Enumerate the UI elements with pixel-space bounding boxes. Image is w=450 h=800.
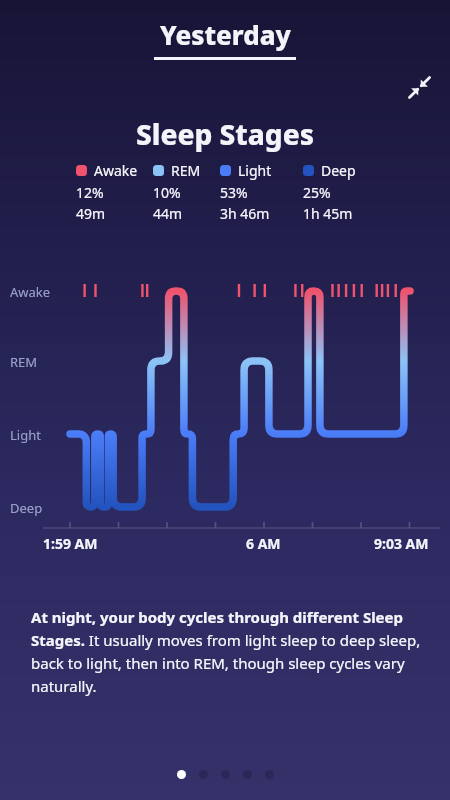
staticText: Awake (10, 283, 51, 301)
button[interactable]: Deep (303, 161, 387, 223)
staticText: Sleep Stages (136, 115, 314, 153)
staticText: 3h 46m (220, 204, 270, 223)
staticText: 44m (153, 204, 183, 223)
staticText: 49m (76, 204, 106, 223)
staticText: Yesterday (160, 17, 291, 52)
button[interactable]: Collapse (400, 68, 438, 106)
staticText: 12% (76, 183, 104, 202)
staticText: 9:03 AM (374, 534, 429, 553)
button[interactable]: Page 2 (199, 770, 208, 779)
staticText: 25% (303, 183, 331, 202)
staticText: REM (10, 353, 38, 371)
button[interactable]: Page 4 (243, 770, 252, 779)
button[interactable]: Awake (76, 161, 153, 223)
staticText: 6 AM (246, 534, 281, 553)
staticText: Deep (321, 161, 356, 180)
staticText: REM (171, 161, 201, 180)
staticText: Deep (10, 499, 43, 517)
staticText: 53% (220, 183, 248, 202)
button[interactable]: Page 5 (265, 770, 274, 779)
staticText: Awake (94, 161, 138, 180)
staticText: 1h 45m (303, 204, 353, 223)
button[interactable]: Page 3 (221, 770, 230, 779)
staticText: 10% (153, 183, 181, 202)
staticText: Light (10, 426, 41, 444)
button[interactable]: Yesterday (154, 17, 296, 60)
staticText: Light (238, 161, 272, 180)
button[interactable]: REM (153, 161, 220, 223)
staticText: At night, your body cycles through diffe… (31, 607, 426, 696)
staticText: 1:59 AM (43, 534, 98, 553)
button[interactable]: Light (220, 161, 303, 223)
button[interactable]: Page 1 (177, 770, 186, 779)
